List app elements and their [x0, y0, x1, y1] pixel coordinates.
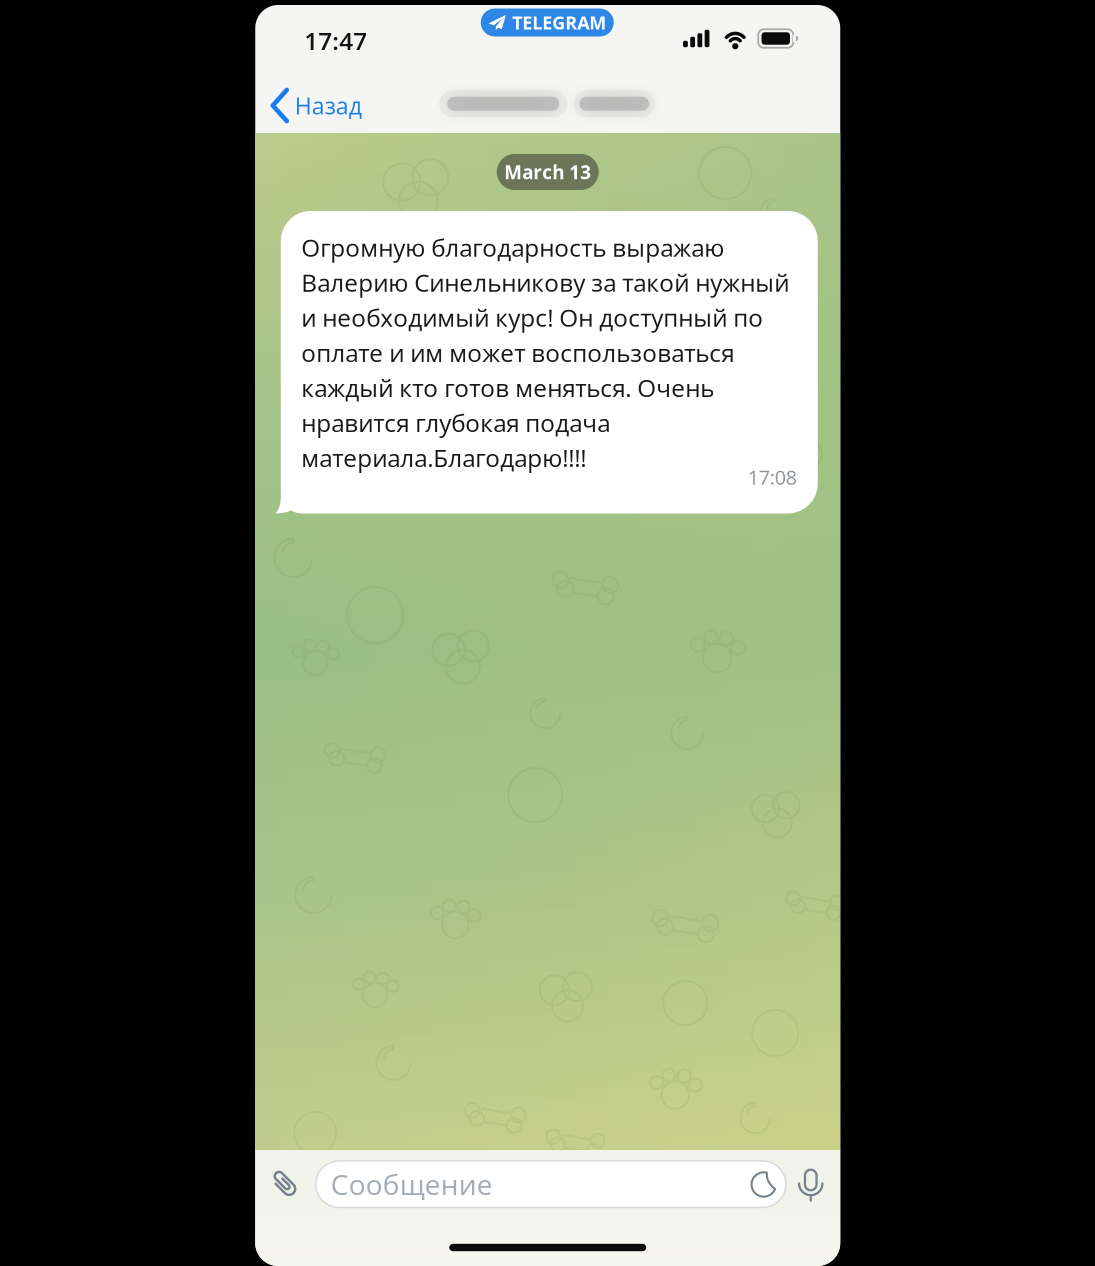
staticText: Валерию Синельникову за такой нужный [301, 266, 789, 299]
button[interactable]: Attach file [273, 1167, 294, 1199]
button[interactable]: Voice message [796, 1168, 826, 1202]
button[interactable]: Chat info [437, 91, 657, 117]
staticText: March 13 [504, 159, 591, 185]
button[interactable]: Back [273, 90, 362, 121]
staticText: и необходимый курс! Он доступный по [301, 301, 763, 334]
button[interactable]: Сообщение [316, 1161, 786, 1207]
button[interactable]: TELEGRAM [481, 8, 614, 36]
staticText: оплате и им может воспользоваться [301, 336, 734, 369]
button[interactable]: Stickers [751, 1171, 777, 1197]
staticText: материала.Благодарю!!!! [301, 441, 586, 474]
staticText: Сообщение [331, 1165, 493, 1203]
staticText: Назад [295, 90, 362, 121]
staticText: нравится глубокая подача [301, 406, 610, 439]
staticText: каждый кто готов меняться. Очень [301, 371, 714, 404]
staticText: Огромную благодарность выражаю [301, 231, 724, 264]
staticText: 17:47 [304, 24, 367, 57]
staticText: TELEGRAM [512, 10, 606, 35]
staticText: 17:08 [748, 464, 797, 490]
